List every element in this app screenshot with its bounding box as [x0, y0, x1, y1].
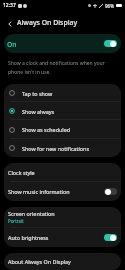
staticText: Screen orientation — [8, 210, 55, 217]
staticText: Always On Display — [17, 18, 78, 27]
staticText: Show as scheduled — [22, 126, 71, 133]
button[interactable]: Auto brightness — [4, 228, 121, 247]
staticText: Show a clock and notifications when your… — [8, 60, 105, 76]
staticText: Show music information — [8, 188, 70, 195]
button[interactable]: Show as scheduled — [4, 120, 121, 139]
button[interactable]: About Always On Display — [4, 253, 121, 270]
button[interactable]: Show music information — [4, 182, 121, 201]
button[interactable]: On — [4, 34, 121, 53]
staticText: Clock style — [8, 169, 35, 176]
staticText: On — [7, 40, 17, 49]
button[interactable]: Tap to show — [4, 84, 121, 102]
staticText: Tap to show — [22, 90, 53, 97]
staticText: Portrait — [8, 218, 24, 224]
button[interactable]: Show for new notifications — [4, 139, 121, 157]
staticText: 12:37 — [3, 2, 16, 9]
staticText: About Always On Display — [8, 258, 71, 265]
staticText: 96% — [105, 3, 114, 9]
button[interactable]: Screen orientation — [4, 207, 121, 228]
button[interactable]: Back — [0, 16, 17, 28]
button[interactable]: Show always — [4, 102, 121, 120]
staticText: Show always — [22, 108, 55, 115]
staticText: Show for new notifications — [22, 145, 90, 152]
button[interactable]: Clock style — [4, 163, 121, 182]
staticText: Auto brightness — [8, 234, 49, 241]
